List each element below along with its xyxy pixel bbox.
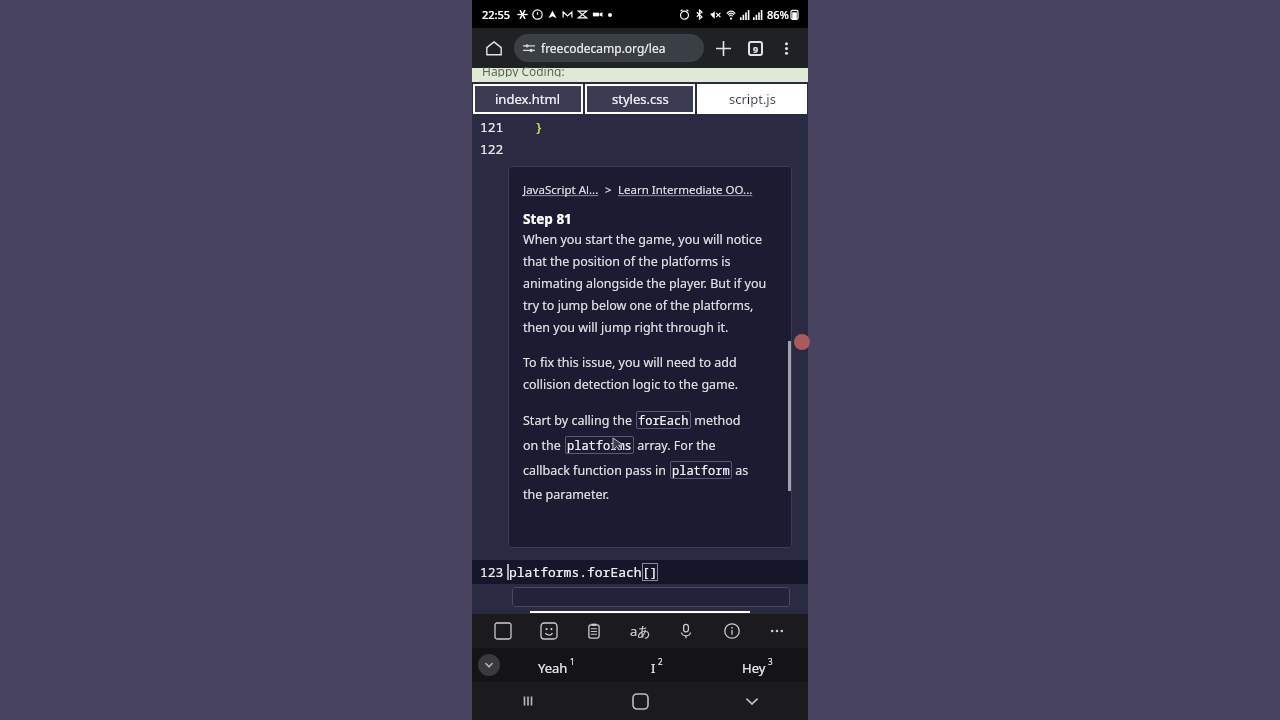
staticText: Happy Coding:: [482, 63, 565, 77]
button[interactable]: Stickers: [534, 616, 564, 646]
staticText: script.js: [729, 90, 776, 108]
button[interactable]: JavaScript Al...: [523, 182, 599, 198]
button[interactable]: freecodecamp.org/lea: [514, 34, 704, 62]
staticText: aあ: [630, 622, 651, 640]
staticText: on the: [523, 437, 565, 454]
staticText: forEach: [638, 412, 689, 428]
button[interactable]: New tab: [708, 33, 738, 63]
button[interactable]: Info: [717, 616, 747, 646]
button[interactable]: GIF: [488, 616, 518, 646]
staticText: 9: [753, 43, 759, 55]
staticText: Step 81: [523, 210, 572, 228]
staticText: 3: [768, 656, 773, 667]
button[interactable]: Home: [584, 682, 696, 720]
staticText: When you start the game, you will notice…: [523, 231, 774, 336]
button[interactable]: [512, 587, 790, 607]
button[interactable]: Hey: [707, 648, 808, 682]
button[interactable]: Home: [480, 34, 508, 62]
staticText: 121: [480, 118, 504, 136]
button[interactable]: script.js: [697, 84, 807, 114]
staticText: as: [732, 462, 749, 479]
button[interactable]: More options: [772, 34, 800, 62]
staticText: 86%: [767, 7, 789, 22]
staticText: method: [691, 412, 741, 429]
staticText: styles.css: [612, 90, 669, 108]
staticText: platform: [672, 462, 730, 478]
button[interactable]: Help: [794, 334, 810, 350]
staticText: platforms: [567, 437, 632, 453]
staticText: the parameter.: [523, 486, 609, 503]
staticText: I: [651, 659, 656, 677]
staticText: freecodecamp.org/lea: [541, 40, 666, 56]
button[interactable]: Collapse suggestions: [478, 654, 500, 676]
staticText: platforms.forEach: [509, 563, 642, 581]
staticText: To fix this issue, you will need to add …: [523, 354, 774, 393]
staticText: }: [535, 118, 543, 136]
staticText: 123: [480, 563, 504, 581]
staticText: array. For the: [634, 437, 716, 454]
staticText: 22:55: [482, 7, 511, 22]
button[interactable]: Translate: [625, 616, 655, 646]
button[interactable]: Recent apps: [472, 682, 584, 720]
staticText: index.html: [495, 90, 561, 108]
button[interactable]: index.html: [473, 84, 583, 114]
staticText: Start by calling the: [523, 412, 636, 429]
staticText: 122: [480, 140, 504, 158]
staticText: Hey: [742, 659, 766, 677]
staticText: Yeah: [538, 659, 568, 677]
staticText: 2: [658, 656, 663, 667]
button[interactable]: styles.css: [585, 84, 695, 114]
button[interactable]: Hide keyboard: [696, 682, 808, 720]
staticText: 1: [570, 656, 575, 667]
staticText: []: [642, 563, 658, 581]
button[interactable]: Tabs: [740, 33, 770, 63]
button[interactable]: Yeah: [506, 648, 606, 682]
staticText: callback function pass in: [523, 462, 670, 479]
button[interactable]: Learn Intermediate OO...: [618, 182, 753, 198]
staticText: >: [599, 182, 618, 198]
button[interactable]: More: [762, 616, 792, 646]
button[interactable]: Clipboard: [579, 616, 609, 646]
button[interactable]: Voice input: [671, 616, 701, 646]
button[interactable]: I: [606, 648, 707, 682]
